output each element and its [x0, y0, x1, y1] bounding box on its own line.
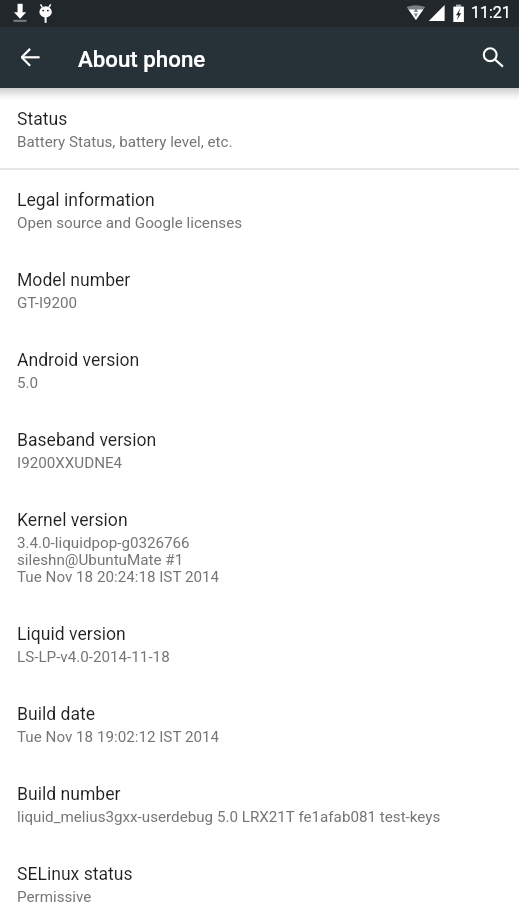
staticText: 3.4.0-liquidpop-g0326766 sileshn@UbuntuM…: [17, 534, 220, 585]
button[interactable]: Kernel version: [0, 510, 519, 585]
button[interactable]: SELinux status: [0, 864, 519, 905]
staticText: Open source and Google licenses: [17, 214, 243, 231]
staticText: Build date: [17, 704, 96, 725]
button[interactable]: Legal information: [0, 190, 519, 231]
button[interactable]: Liquid version: [0, 624, 519, 665]
staticText: Baseband version: [17, 430, 157, 451]
staticText: Battery Status, battery level, etc.: [17, 133, 233, 150]
button[interactable]: Search: [466, 33, 514, 81]
button[interactable]: Model number: [0, 270, 519, 311]
staticText: SELinux status: [17, 864, 133, 885]
staticText: LS-LP-v4.0-2014-11-18: [17, 648, 170, 665]
staticText: Status: [17, 109, 68, 130]
staticText: Build number: [17, 784, 121, 805]
staticText: liquid_melius3gxx-userdebug 5.0 LRX21T f…: [17, 808, 441, 825]
button[interactable]: Status: [0, 109, 519, 150]
staticText: I9200XXUDNE4: [17, 454, 123, 471]
button[interactable]: Build number: [0, 784, 519, 825]
button[interactable]: Build date: [0, 704, 519, 745]
button[interactable]: Android version: [0, 350, 519, 391]
staticText: Android version: [17, 350, 140, 371]
staticText: Model number: [17, 270, 131, 291]
staticText: GT-I9200: [17, 294, 78, 311]
staticText: About phone: [78, 46, 206, 72]
staticText: Tue Nov 18 19:02:12 IST 2014: [17, 728, 220, 745]
staticText: 11:21: [471, 3, 511, 22]
staticText: Legal information: [17, 190, 155, 211]
button[interactable]: Back: [6, 33, 54, 81]
button[interactable]: Baseband version: [0, 430, 519, 471]
staticText: Liquid version: [17, 624, 126, 645]
staticText: Permissive: [17, 888, 92, 905]
staticText: 5.0: [17, 374, 39, 391]
staticText: Kernel version: [17, 510, 128, 531]
